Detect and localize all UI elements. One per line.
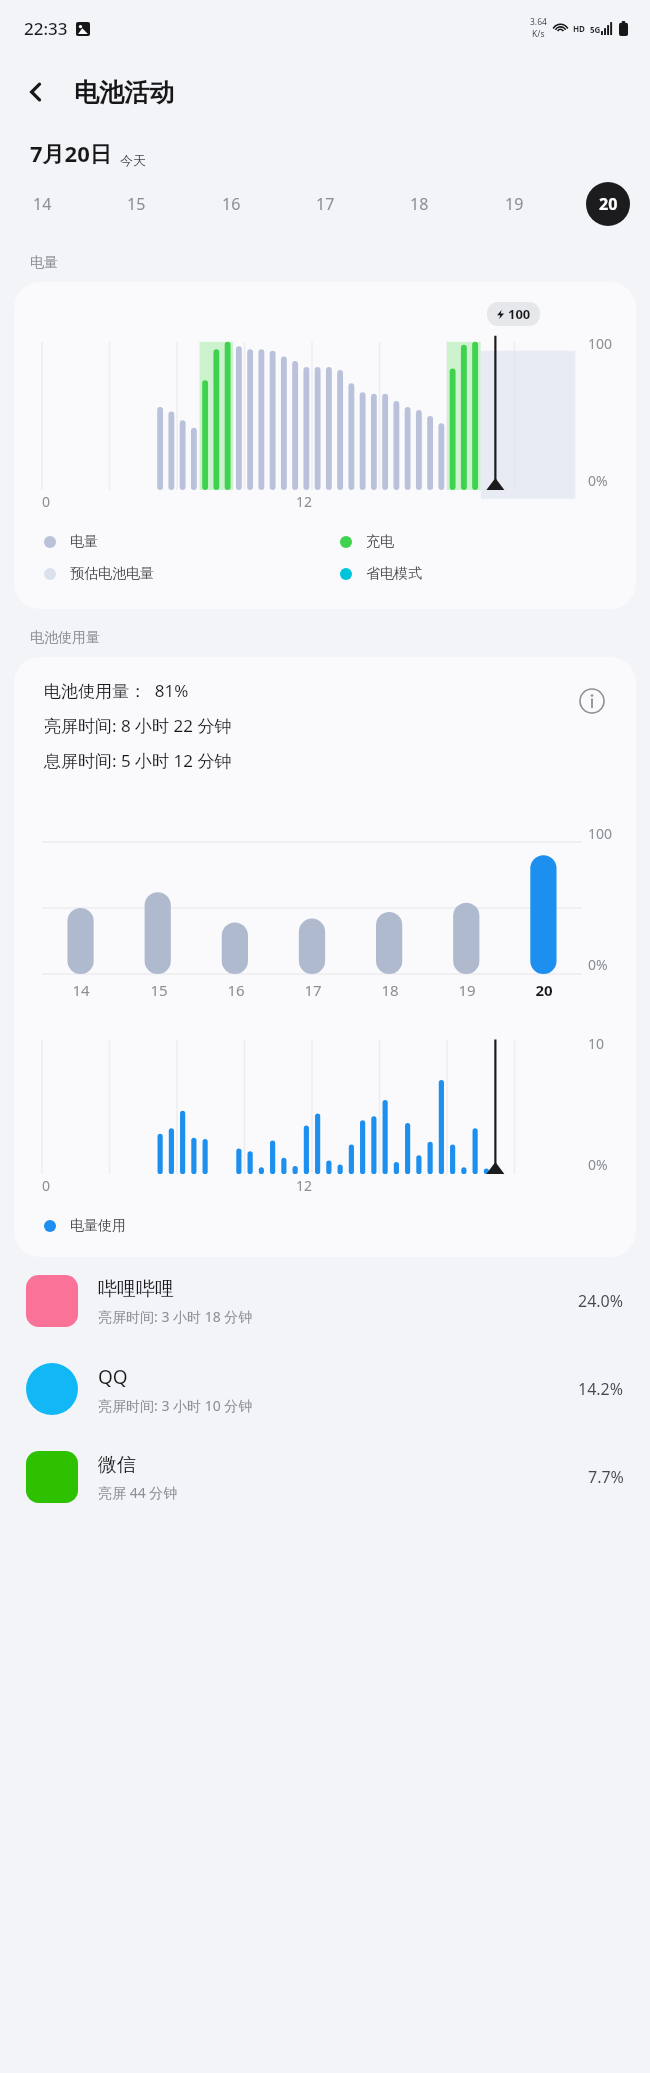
- staticText: 100: [508, 305, 531, 323]
- staticText: 省电模式: [366, 565, 422, 583]
- staticText: 15: [127, 193, 146, 215]
- button[interactable]: 哔哩哔哩: [0, 1257, 650, 1345]
- button[interactable]: 微信: [0, 1433, 650, 1521]
- staticText: 电池使用量: [30, 629, 100, 647]
- staticText: 100: [588, 334, 613, 353]
- button[interactable]: 20: [586, 182, 630, 226]
- staticText: QQ: [98, 1364, 128, 1390]
- button[interactable]: 15: [114, 182, 158, 226]
- staticText: 电量使用: [70, 1217, 126, 1235]
- staticText: 18: [410, 193, 429, 215]
- staticText: 3.64: [530, 16, 547, 28]
- staticText: 0%: [588, 471, 608, 490]
- staticText: K/s: [532, 28, 545, 40]
- staticText: 19: [505, 193, 524, 215]
- staticText: 19: [458, 980, 476, 1000]
- staticText: 亮屏 44 分钟: [98, 1483, 178, 1502]
- staticText: 0: [42, 492, 51, 511]
- staticText: 100: [588, 824, 613, 843]
- button[interactable]: Back: [12, 68, 60, 116]
- staticText: 15: [150, 980, 168, 1000]
- staticText: 电量: [70, 533, 98, 551]
- button[interactable]: 18: [397, 182, 441, 226]
- staticText: 今天: [120, 152, 146, 168]
- staticText: 亮屏时间: 3 小时 18 分钟: [98, 1307, 253, 1326]
- staticText: 5G: [590, 24, 601, 35]
- staticText: 10: [588, 1034, 605, 1053]
- staticText: 24.0%: [578, 1290, 624, 1312]
- button[interactable]: Info: [572, 681, 612, 721]
- staticText: 电池活动: [74, 77, 174, 108]
- staticText: 20: [599, 193, 618, 215]
- staticText: 电池使用量： 81%: [44, 679, 189, 702]
- staticText: 7.7%: [588, 1466, 624, 1488]
- staticText: 14: [72, 980, 90, 1000]
- staticText: 息屏时间: 5 小时 12 分钟: [44, 749, 232, 772]
- button[interactable]: 17: [303, 182, 347, 226]
- staticText: 0: [42, 1176, 51, 1195]
- button[interactable]: 14: [20, 182, 64, 226]
- staticText: 微信: [98, 1453, 136, 1477]
- staticText: 预估电池电量: [70, 565, 154, 583]
- staticText: 7月20日: [30, 138, 112, 168]
- staticText: 0%: [588, 955, 608, 974]
- staticText: 22:33: [24, 17, 68, 40]
- staticText: 电量: [30, 254, 58, 272]
- staticText: HD: [573, 23, 585, 34]
- button[interactable]: 19: [492, 182, 536, 226]
- staticText: 16: [227, 980, 245, 1000]
- staticText: 18: [381, 980, 399, 1000]
- staticText: 17: [304, 980, 322, 1000]
- staticText: 12: [296, 1176, 313, 1195]
- staticText: 16: [222, 193, 241, 215]
- staticText: 14: [33, 193, 52, 215]
- staticText: 哔哩哔哩: [98, 1277, 174, 1301]
- staticText: 亮屏时间: 3 小时 10 分钟: [98, 1396, 253, 1415]
- button[interactable]: 16: [209, 182, 253, 226]
- staticText: 12: [296, 492, 313, 511]
- staticText: 17: [316, 193, 335, 215]
- staticText: 充电: [366, 533, 394, 551]
- staticText: 0%: [588, 1155, 608, 1174]
- staticText: 14.2%: [578, 1378, 624, 1400]
- staticText: 20: [535, 980, 553, 1000]
- button[interactable]: QQ: [0, 1345, 650, 1433]
- staticText: 亮屏时间: 8 小时 22 分钟: [44, 714, 232, 737]
